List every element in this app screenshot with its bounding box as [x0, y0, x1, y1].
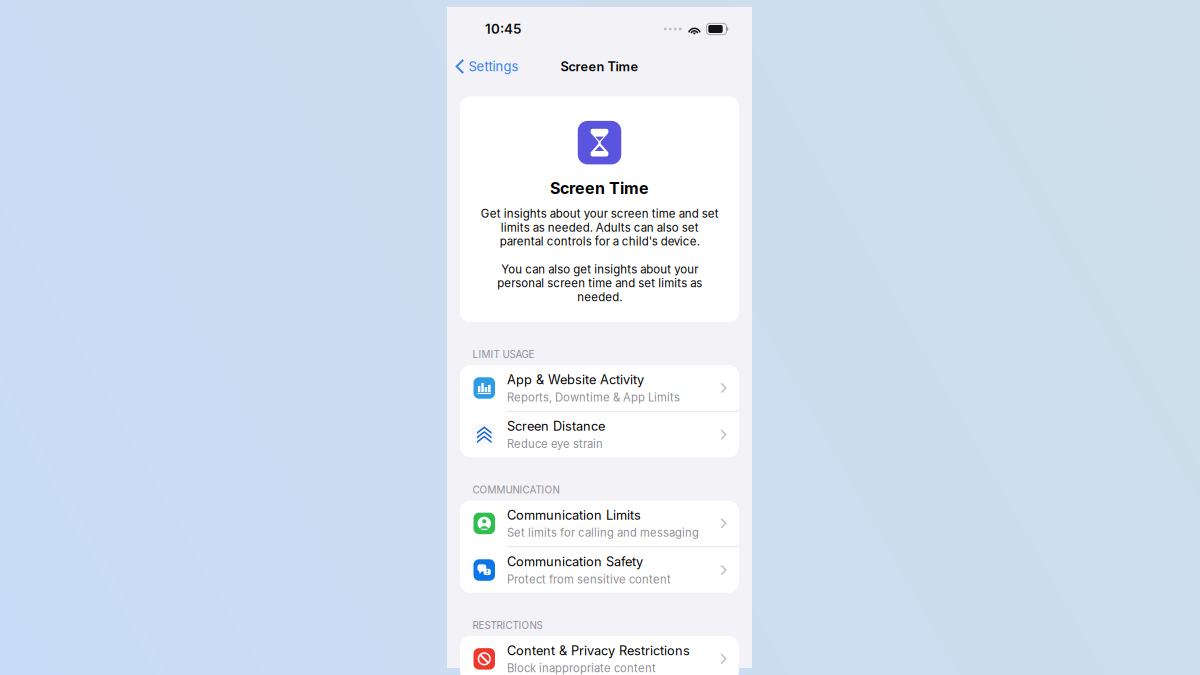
- staticText: Settings: [468, 59, 518, 74]
- staticText: You can also get insights about your per…: [497, 262, 702, 304]
- staticText: Set limits for calling and messaging: [507, 526, 699, 540]
- staticText: App & Website Activity: [507, 372, 644, 387]
- staticText: 10:45: [485, 21, 521, 37]
- staticText: Communication Limits: [507, 507, 641, 523]
- staticText: Reduce eye strain: [507, 437, 603, 451]
- button[interactable]: Communication Safety: [460, 547, 739, 593]
- staticText: LIMIT USAGE: [472, 348, 534, 360]
- staticText: Get insights about your screen time and …: [480, 207, 718, 248]
- staticText: Screen Distance: [507, 418, 605, 434]
- button[interactable]: Settings: [447, 49, 526, 83]
- staticText: Reports, Downtime & App Limits: [507, 391, 680, 404]
- staticText: COMMUNICATION: [472, 484, 559, 496]
- staticText: Block inappropriate content: [507, 661, 656, 675]
- staticText: RESTRICTIONS: [472, 619, 542, 631]
- staticText: Screen Time: [550, 178, 649, 198]
- button[interactable]: Content & Privacy Restrictions: [460, 636, 739, 675]
- button[interactable]: Screen Distance: [460, 412, 739, 457]
- staticText: Protect from sensitive content: [507, 573, 671, 586]
- staticText: Content & Privacy Restrictions: [507, 643, 690, 658]
- button[interactable]: App & Website Activity: [460, 365, 739, 411]
- button[interactable]: Communication Limits: [460, 501, 739, 546]
- staticText: Screen Time: [560, 59, 638, 74]
- staticText: Communication Safety: [507, 554, 643, 569]
